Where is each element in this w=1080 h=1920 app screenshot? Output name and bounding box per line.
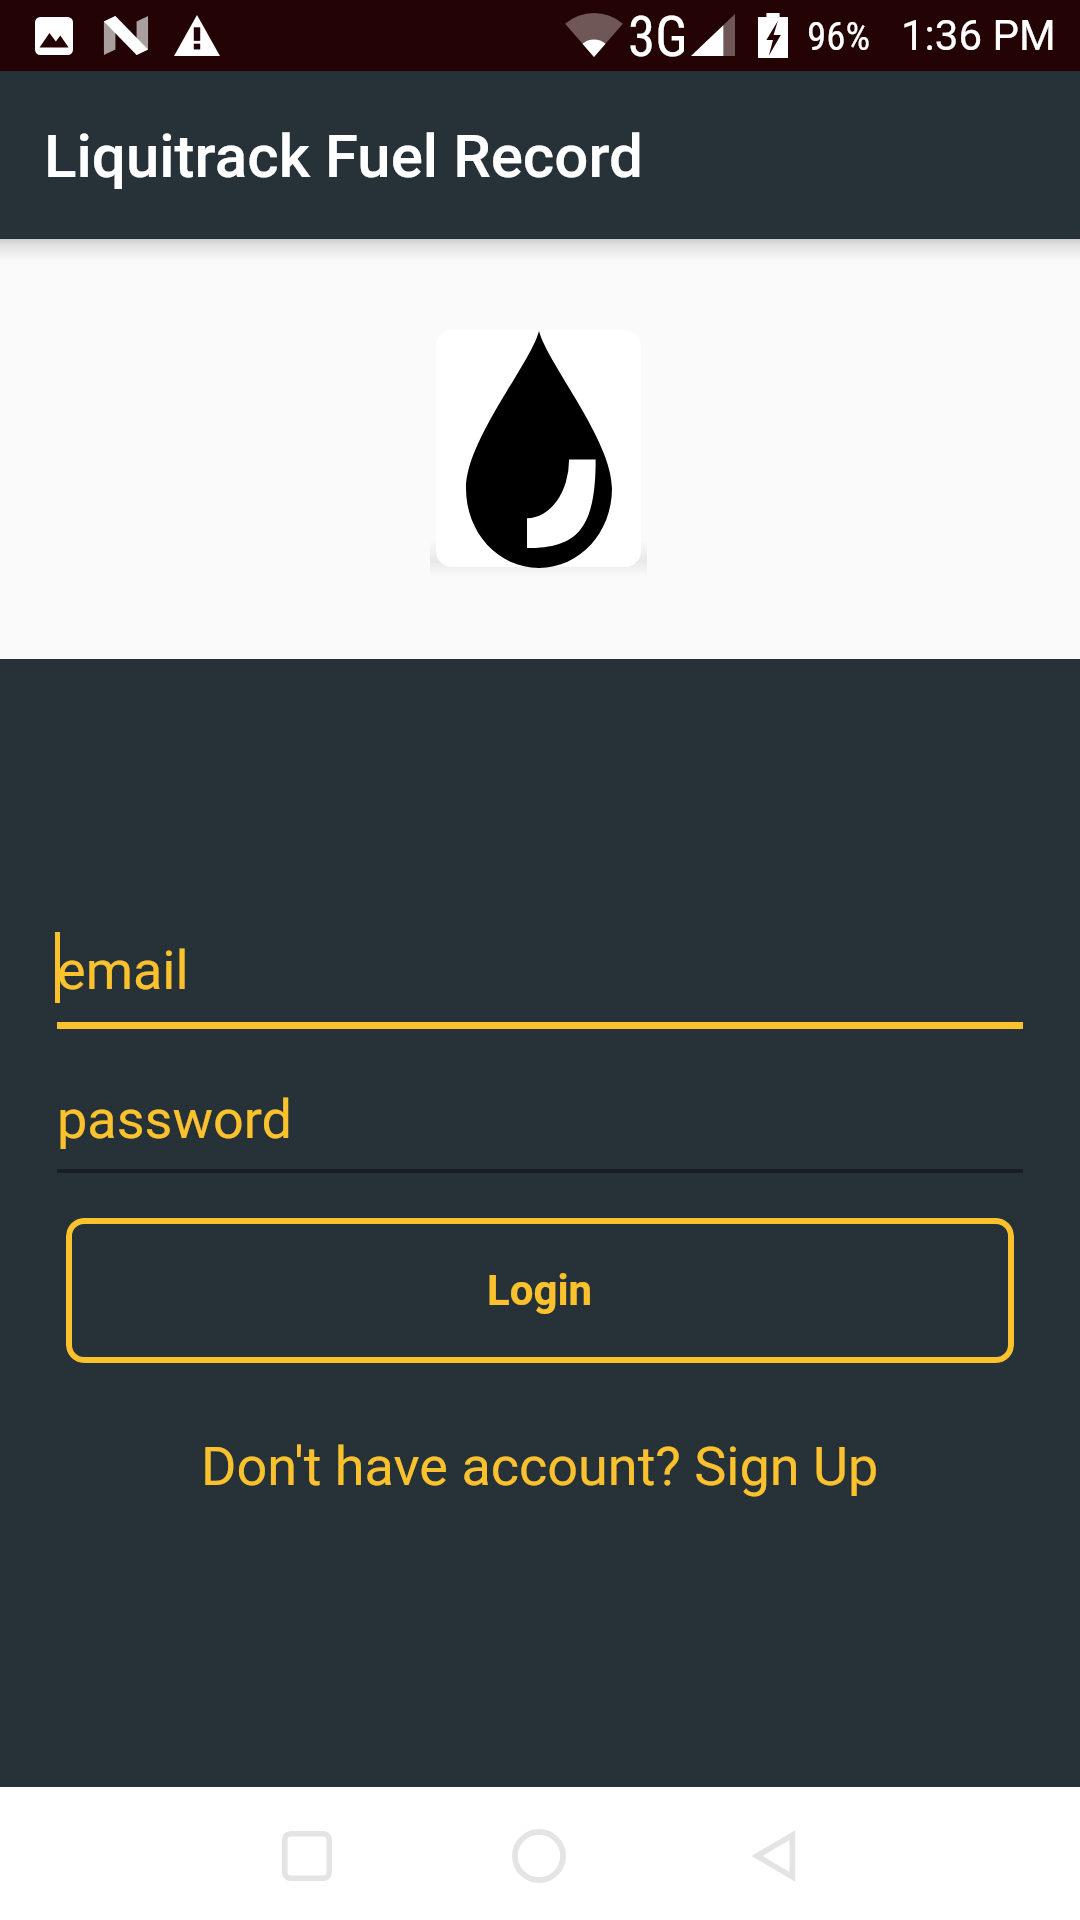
staticText: email (57, 939, 189, 1002)
button[interactable]: email (57, 925, 1023, 1029)
button[interactable]: password (57, 1074, 1023, 1173)
staticText: 1:36 PM (901, 11, 1056, 60)
button[interactable]: Home (489, 1806, 589, 1906)
staticText: 96% (807, 14, 871, 60)
button[interactable]: Recents (257, 1806, 357, 1906)
staticText: Login (487, 1266, 593, 1315)
staticText: 3G (628, 5, 688, 69)
staticText: Don't have account? Sign Up (201, 1435, 879, 1498)
staticText: password (57, 1088, 293, 1151)
button[interactable]: Login (66, 1218, 1014, 1363)
button[interactable]: Don't have account? Sign Up (170, 1420, 910, 1512)
button[interactable]: Back (725, 1806, 825, 1906)
staticText: Liquitrack Fuel Record (44, 121, 643, 191)
